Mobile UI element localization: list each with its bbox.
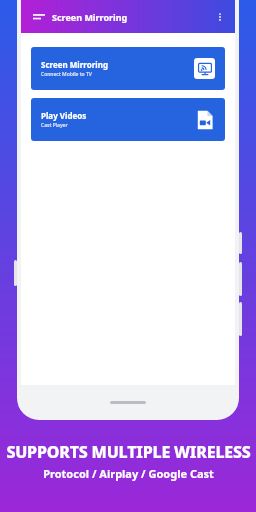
- button[interactable]: More options: [210, 7, 230, 27]
- staticText: Screen Mirroring: [52, 11, 128, 23]
- button[interactable]: Open navigation menu: [29, 7, 49, 27]
- staticText: Protocol / Airplay / Google Cast: [43, 466, 214, 481]
- staticText: Play Videos: [41, 110, 87, 121]
- staticText: Connect Mobile to TV: [41, 71, 92, 78]
- staticText: SUPPORTS MULTIPLE WIRELESS: [6, 441, 251, 463]
- staticText: Cast Player: [41, 122, 68, 129]
- button[interactable]: Play Videos: [31, 98, 225, 141]
- button[interactable]: Screen Mirroring: [31, 47, 225, 90]
- staticText: Screen Mirroring: [41, 59, 108, 70]
